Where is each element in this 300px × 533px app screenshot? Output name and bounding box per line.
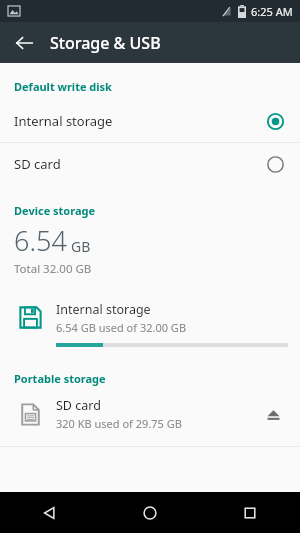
button[interactable]: Back: [6, 25, 42, 61]
staticText: Total 32.00 GB: [14, 261, 92, 277]
button[interactable]: Recent apps: [200, 492, 300, 533]
staticText: Portable storage: [14, 371, 106, 386]
button[interactable]: Back: [0, 492, 100, 533]
staticText: 6:25 AM: [251, 4, 293, 19]
staticText: Storage & USB: [50, 32, 161, 54]
staticText: GB: [71, 237, 91, 256]
staticText: Device storage: [14, 203, 96, 218]
staticText: 6.54 GB used of 32.00 GB: [56, 320, 187, 335]
staticText: SD card: [14, 155, 61, 173]
button[interactable]: Internal storage: [0, 100, 300, 142]
staticText: 6.54: [14, 222, 67, 259]
staticText: Internal storage: [14, 112, 113, 130]
button[interactable]: Internal storage: [0, 291, 300, 359]
staticText: Default write disk: [14, 79, 112, 94]
staticText: SD card: [56, 397, 101, 414]
button[interactable]: SD card: [0, 390, 300, 438]
button[interactable]: Eject SD card: [256, 397, 290, 431]
staticText: Internal storage: [56, 301, 151, 318]
button[interactable]: Home: [100, 492, 200, 533]
button[interactable]: SD card: [0, 143, 300, 185]
staticText: 320 KB used of 29.75 GB: [56, 416, 182, 431]
